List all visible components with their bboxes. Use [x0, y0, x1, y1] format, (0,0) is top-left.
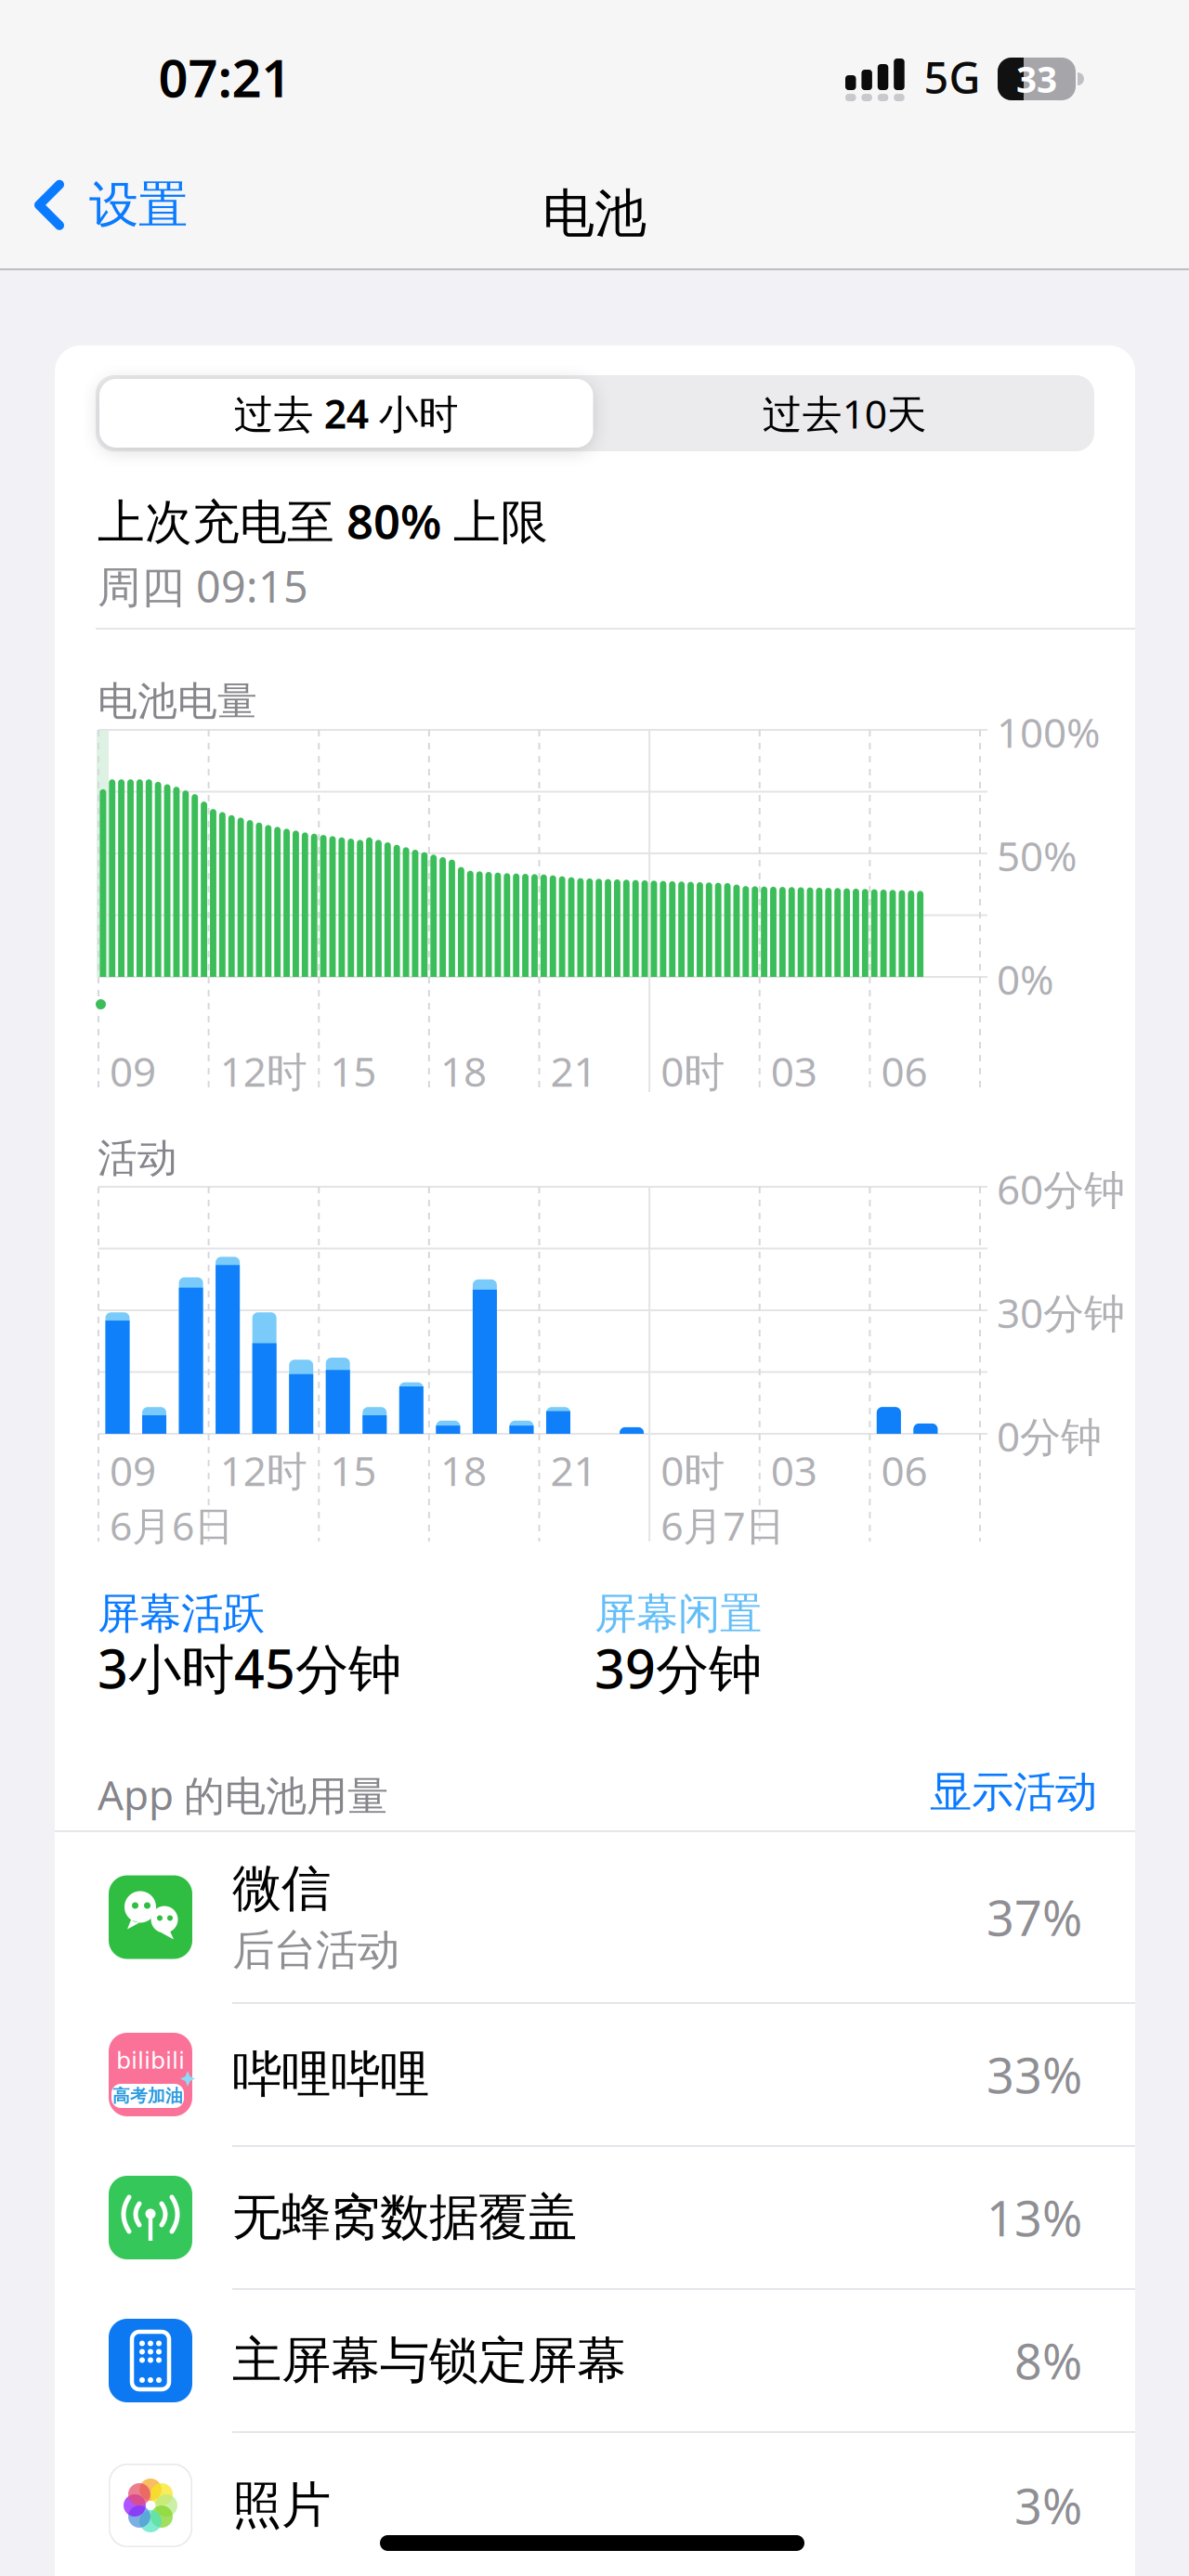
staticText: 12时 — [220, 1044, 307, 1098]
staticText: 高考加油 — [112, 2085, 183, 2106]
staticText: 33% — [986, 2043, 1082, 2107]
staticText: 8% — [1014, 2329, 1082, 2393]
staticText: 6月6日 — [110, 1499, 234, 1551]
staticText: 0时 — [661, 1443, 725, 1497]
staticText: 03 — [771, 1443, 817, 1497]
staticText: 13% — [986, 2186, 1082, 2250]
staticText: 屏幕闲置 — [594, 1588, 762, 1640]
staticText: 3小时45分钟 — [98, 1633, 401, 1703]
staticText: 0分钟 — [997, 1409, 1102, 1463]
staticText: 09 — [110, 1443, 156, 1497]
staticText: 06 — [881, 1443, 927, 1497]
button[interactable]: 主屏幕与锁定屏幕 — [55, 2290, 1135, 2431]
staticText: 100% — [997, 705, 1101, 759]
staticText: 过去10天 — [762, 387, 927, 440]
staticText: 屏幕活跃 — [98, 1588, 265, 1640]
staticText: 09 — [110, 1044, 156, 1098]
staticText: 过去 24 小时 — [234, 387, 459, 440]
staticText: 后台活动 — [232, 1924, 399, 1976]
staticText: 39分钟 — [594, 1633, 762, 1703]
staticText: 6月7日 — [661, 1499, 785, 1551]
staticText: 18 — [440, 1044, 487, 1098]
staticText: 06 — [881, 1044, 927, 1098]
staticText: 03 — [771, 1044, 817, 1098]
staticText: 12时 — [220, 1443, 307, 1497]
button[interactable]: 过去 24 小时 — [99, 379, 593, 448]
staticText: 33 — [1016, 55, 1057, 103]
staticText: 无蜂窝数据覆盖 — [232, 2187, 577, 2248]
staticText: 07:21 — [158, 43, 291, 112]
button[interactable]: 微信 — [55, 1832, 1135, 2002]
staticText: 15 — [330, 1044, 376, 1098]
staticText: 18 — [440, 1443, 487, 1497]
button[interactable]: 返回设置 — [32, 175, 188, 235]
staticText: App 的电池用量 — [98, 1767, 388, 1822]
staticText: 37% — [986, 1885, 1082, 1949]
staticText: 微信 — [232, 1858, 331, 1919]
staticText: 3% — [1014, 2473, 1082, 2538]
staticText: 电池电量 — [98, 677, 257, 726]
staticText: 0时 — [661, 1044, 725, 1098]
staticText: 照片 — [232, 2475, 331, 2536]
button[interactable]: 照片 — [55, 2433, 1135, 2576]
staticText: 主屏幕与锁定屏幕 — [232, 2330, 626, 2391]
button[interactable]: bilibili — [55, 2004, 1135, 2145]
staticText: 21 — [550, 1044, 597, 1098]
staticText: 30分钟 — [997, 1285, 1125, 1339]
staticText: 15 — [330, 1443, 376, 1497]
staticText: 60分钟 — [997, 1162, 1125, 1216]
staticText: 显示活动 — [930, 1766, 1097, 1818]
staticText: 上次充电至 80% 上限 — [98, 489, 548, 552]
staticText: bilibili — [116, 2047, 185, 2074]
staticText: 周四 09:15 — [98, 557, 308, 615]
button[interactable]: 无蜂窝数据覆盖 — [55, 2147, 1135, 2288]
button[interactable]: 过去10天 — [595, 375, 1094, 451]
staticText: 哔哩哔哩 — [232, 2044, 429, 2105]
staticText: 设置 — [89, 175, 188, 235]
staticText: 5G — [924, 48, 980, 106]
staticText: 50% — [997, 828, 1078, 883]
staticText: 活动 — [98, 1134, 177, 1183]
staticText: 电池 — [542, 182, 647, 246]
staticText: 0% — [997, 952, 1054, 1006]
button[interactable]: 显示活动 — [893, 1766, 1134, 1818]
staticText: 21 — [550, 1443, 597, 1497]
